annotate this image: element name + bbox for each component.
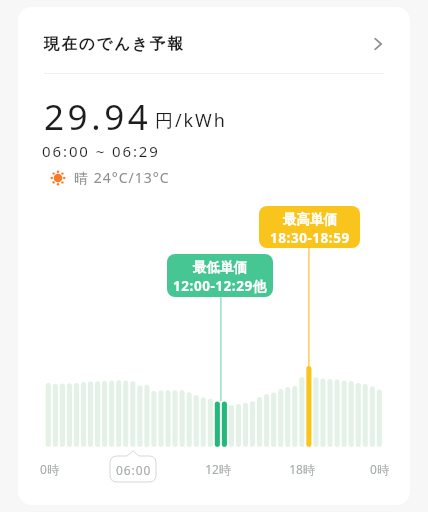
button[interactable]: 最高単価 — [259, 206, 360, 248]
staticText: 最低単価 — [193, 259, 247, 276]
staticText: 0時 — [40, 461, 59, 477]
staticText: 0時 — [370, 461, 389, 477]
staticText: 円/kWh — [155, 108, 227, 133]
staticText: 現在のでんき予報 — [44, 34, 185, 54]
button[interactable]: 06:00 — [110, 451, 156, 482]
staticText: 29.94 — [44, 93, 152, 141]
button[interactable]: 現在のでんき予報 — [18, 18, 410, 70]
other: 詳細 — [370, 36, 386, 52]
staticText: 12:00-12:29他 — [173, 277, 267, 295]
staticText: 06:00 — [116, 462, 152, 478]
staticText: 12時 — [205, 461, 231, 477]
staticText: 06:00 ~ 06:29 — [42, 141, 160, 161]
staticText: 晴 24°C/13°C — [74, 168, 170, 187]
staticText: 18時 — [289, 461, 315, 477]
staticText: 18:30-18:59 — [270, 229, 350, 247]
staticText: 最高単価 — [283, 211, 337, 228]
button[interactable]: 最低単価 — [167, 254, 273, 297]
